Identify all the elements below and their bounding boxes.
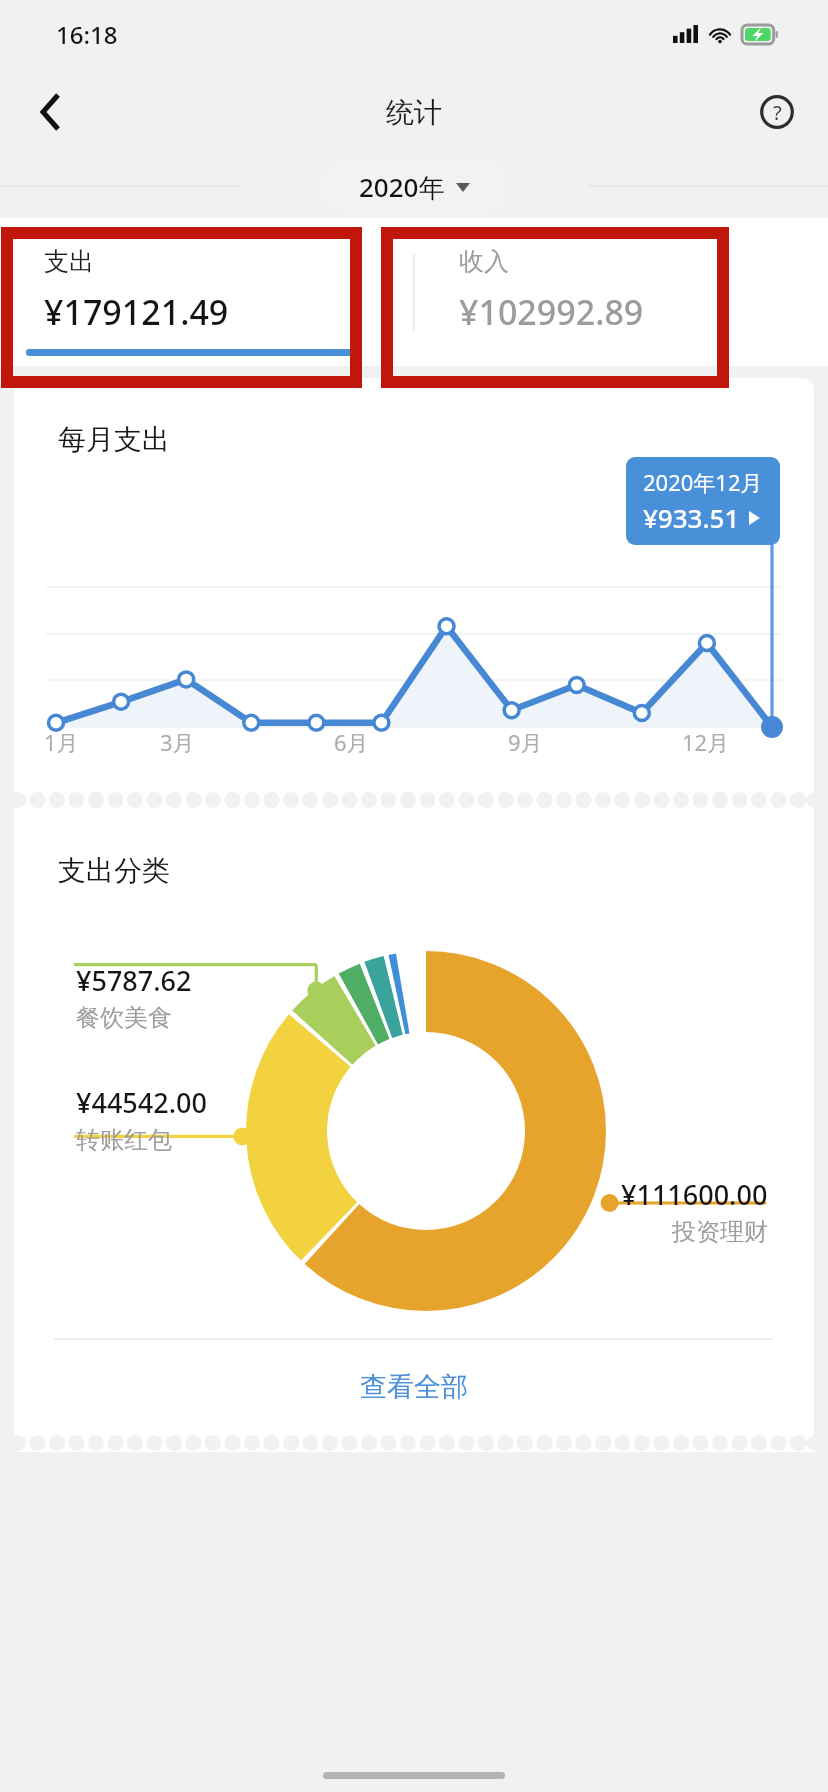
staticText: 每月支出	[58, 422, 170, 457]
button[interactable]: Back	[20, 81, 82, 143]
staticText: 餐饮美食	[76, 1003, 172, 1033]
button[interactable]: 收入	[415, 218, 828, 366]
staticText: 支出分类	[58, 853, 170, 888]
staticText: 16:18	[56, 18, 118, 51]
staticText: 1月	[44, 727, 79, 757]
staticText: ¥933.51	[643, 500, 740, 535]
staticText: ¥5787.62	[76, 962, 192, 999]
staticText: ¥44542.00	[76, 1084, 207, 1121]
staticText: 9月	[508, 727, 543, 757]
staticText: 2020年	[359, 169, 445, 205]
staticText: 收入	[459, 246, 509, 277]
staticText: ?	[773, 99, 782, 126]
button[interactable]: 支出	[0, 218, 413, 366]
staticText: 12月	[682, 727, 730, 757]
staticText: ¥111600.00	[621, 1176, 768, 1213]
button[interactable]: 2020年12月	[626, 457, 780, 545]
staticText: ¥179121.49	[44, 289, 229, 335]
staticText: 支出	[44, 246, 94, 277]
staticText: 投资理财	[672, 1217, 768, 1247]
staticText: ¥102992.89	[459, 289, 644, 335]
button[interactable]: 2020年	[321, 159, 508, 215]
staticText: 3月	[160, 727, 195, 757]
button[interactable]: 查看全部	[14, 1340, 814, 1434]
button[interactable]: Help	[746, 81, 808, 143]
staticText: 查看全部	[360, 1370, 468, 1404]
staticText: 2020年12月	[643, 467, 763, 497]
staticText: 统计	[386, 95, 442, 130]
staticText: 6月	[334, 727, 369, 757]
staticText: 转账红包	[76, 1125, 172, 1155]
